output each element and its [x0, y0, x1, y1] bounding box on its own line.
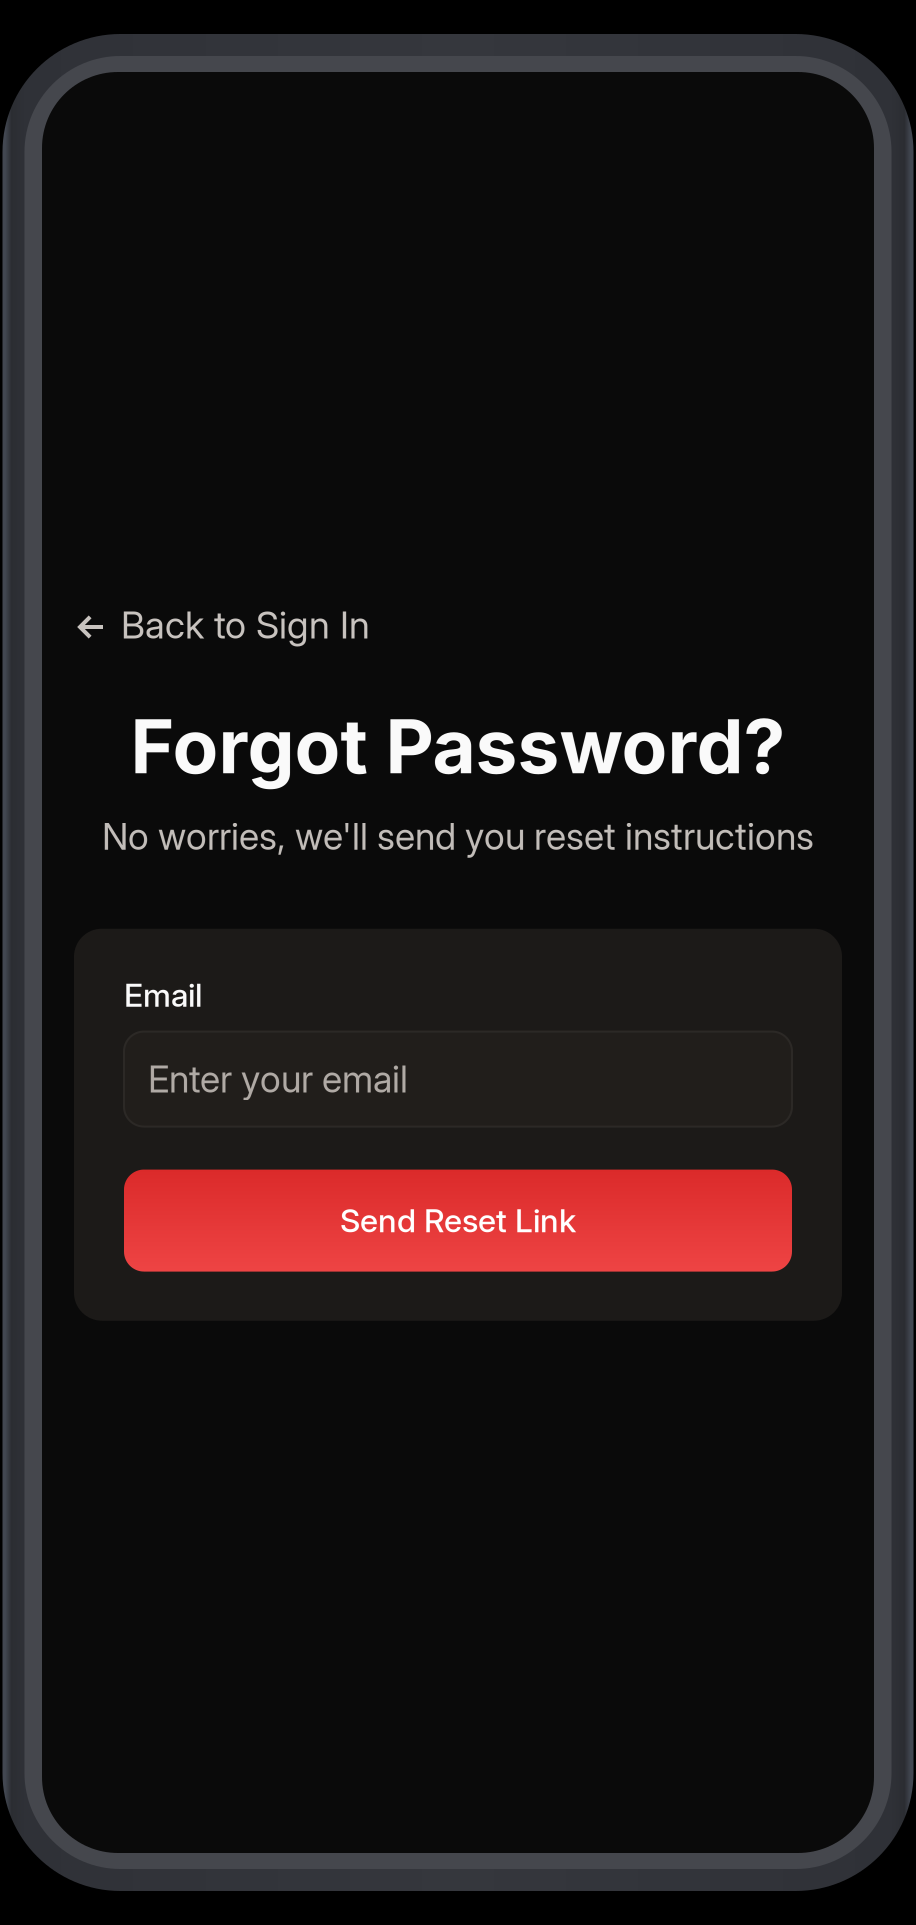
button[interactable]: Back to Sign In — [74, 604, 842, 646]
staticText: Forgot Password? — [130, 701, 785, 791]
staticText: Enter your email — [148, 1057, 408, 1101]
staticText: No worries, we'll send you reset instruc… — [102, 814, 814, 859]
staticText: Back to Sign In — [121, 602, 370, 648]
button[interactable]: Send Reset Link — [124, 1170, 792, 1272]
staticText: Email — [124, 976, 202, 1015]
staticText: Send Reset Link — [340, 1201, 576, 1240]
